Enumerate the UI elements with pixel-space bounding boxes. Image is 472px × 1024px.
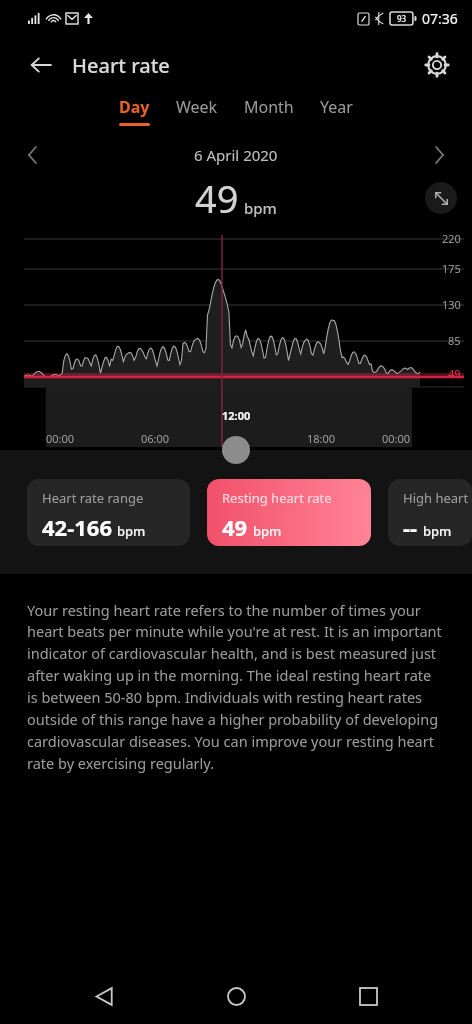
button[interactable]: Heart rate range (27, 479, 190, 546)
staticText: 07:36 (422, 9, 458, 28)
staticText: 18:00 (307, 431, 336, 446)
staticText: bpm (244, 198, 277, 218)
staticText: 49 (448, 366, 461, 381)
staticText: 175 (442, 261, 461, 276)
staticText: 49 (222, 512, 248, 542)
staticText: 00:00 (46, 431, 75, 446)
staticText: 93 (397, 13, 407, 24)
button[interactable]: Back (76, 968, 132, 1024)
staticText: Week (176, 96, 218, 118)
button[interactable]: Previous day (16, 138, 50, 172)
staticText: Year (320, 96, 353, 118)
staticText: 12:00 (222, 408, 251, 423)
staticText: 42-166 (42, 512, 112, 542)
staticText: Heart rate range (42, 489, 144, 507)
staticText: 85 (448, 333, 461, 348)
staticText: Heart rate (72, 52, 170, 79)
staticText: 220 (442, 231, 461, 246)
staticText: 6 April 2020 (194, 145, 278, 165)
staticText: High heart rate (403, 489, 472, 507)
staticText: 06:00 (141, 431, 170, 446)
button[interactable]: Recent apps (340, 968, 396, 1024)
staticText: bpm (253, 522, 282, 540)
staticText: Day (119, 96, 150, 118)
staticText: Month (244, 96, 294, 118)
button[interactable]: Next day (422, 138, 456, 172)
button[interactable]: Day (106, 94, 163, 128)
button[interactable]: Resting heart rate (207, 479, 371, 546)
button[interactable]: High heart rate (388, 479, 472, 546)
button[interactable]: Expand chart (425, 182, 457, 214)
button[interactable]: Back (22, 46, 60, 84)
staticText: 130 (442, 297, 461, 312)
staticText: bpm (423, 522, 452, 540)
staticText: 00:00 (382, 431, 411, 446)
staticText: Your resting heart rate refers to the nu… (27, 600, 445, 774)
button[interactable]: Month (231, 94, 307, 125)
staticText: bpm (117, 522, 146, 540)
button[interactable]: Settings (416, 44, 458, 86)
button[interactable]: Year (307, 94, 366, 125)
staticText: 49 (195, 172, 239, 224)
button[interactable]: Home (208, 968, 264, 1024)
staticText: -- (403, 512, 418, 542)
staticText: Resting heart rate (222, 489, 332, 507)
button[interactable]: Week (163, 94, 231, 125)
